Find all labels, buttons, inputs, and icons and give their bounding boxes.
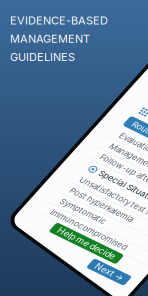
staticText: › [131,235,135,246]
button[interactable]: Next → [81,264,123,277]
button[interactable]: Help me decide [27,248,102,260]
staticText: Help me decide [33,249,96,259]
staticText: › [131,206,135,217]
staticText: MANAGEMENT [10,32,90,45]
button[interactable]: Clinical Pathways [5,97,143,112]
staticText: Immunocompromised [15,235,99,245]
staticText: Special Situation [25,177,91,187]
button[interactable]: Unsatisfactory test results [5,190,143,204]
button[interactable]: Routine Management [10,114,138,127]
staticText: Next → [87,265,117,276]
staticText: Symptomatic [15,221,65,231]
button[interactable]: Post hyperkalemia [5,204,143,219]
staticText: › [131,161,135,172]
button[interactable]: Follow-up after treatment [5,159,143,174]
staticText: › [131,132,135,143]
staticText: › [131,220,135,231]
button[interactable]: Evaluation of a new patient [5,130,143,145]
staticText: Post hyperkalemia [15,206,84,216]
staticText: EVIDENCE-BASED [10,14,108,27]
staticText: › [131,191,135,202]
button[interactable]: Immunocompromised [5,233,143,248]
staticText: GUIDELINES [10,50,75,64]
staticText: Follow-up after treatment [15,161,114,171]
staticText: Routine Management [17,116,102,126]
staticText: Evaluation of a new patient [15,132,118,142]
button[interactable]: Management of heart failure [5,145,143,159]
button[interactable]: Symptomatic [5,219,143,233]
staticText: Management of heart failure [15,147,123,157]
staticText: › [131,146,135,157]
staticText: Unsatisfactory test results [15,192,115,202]
